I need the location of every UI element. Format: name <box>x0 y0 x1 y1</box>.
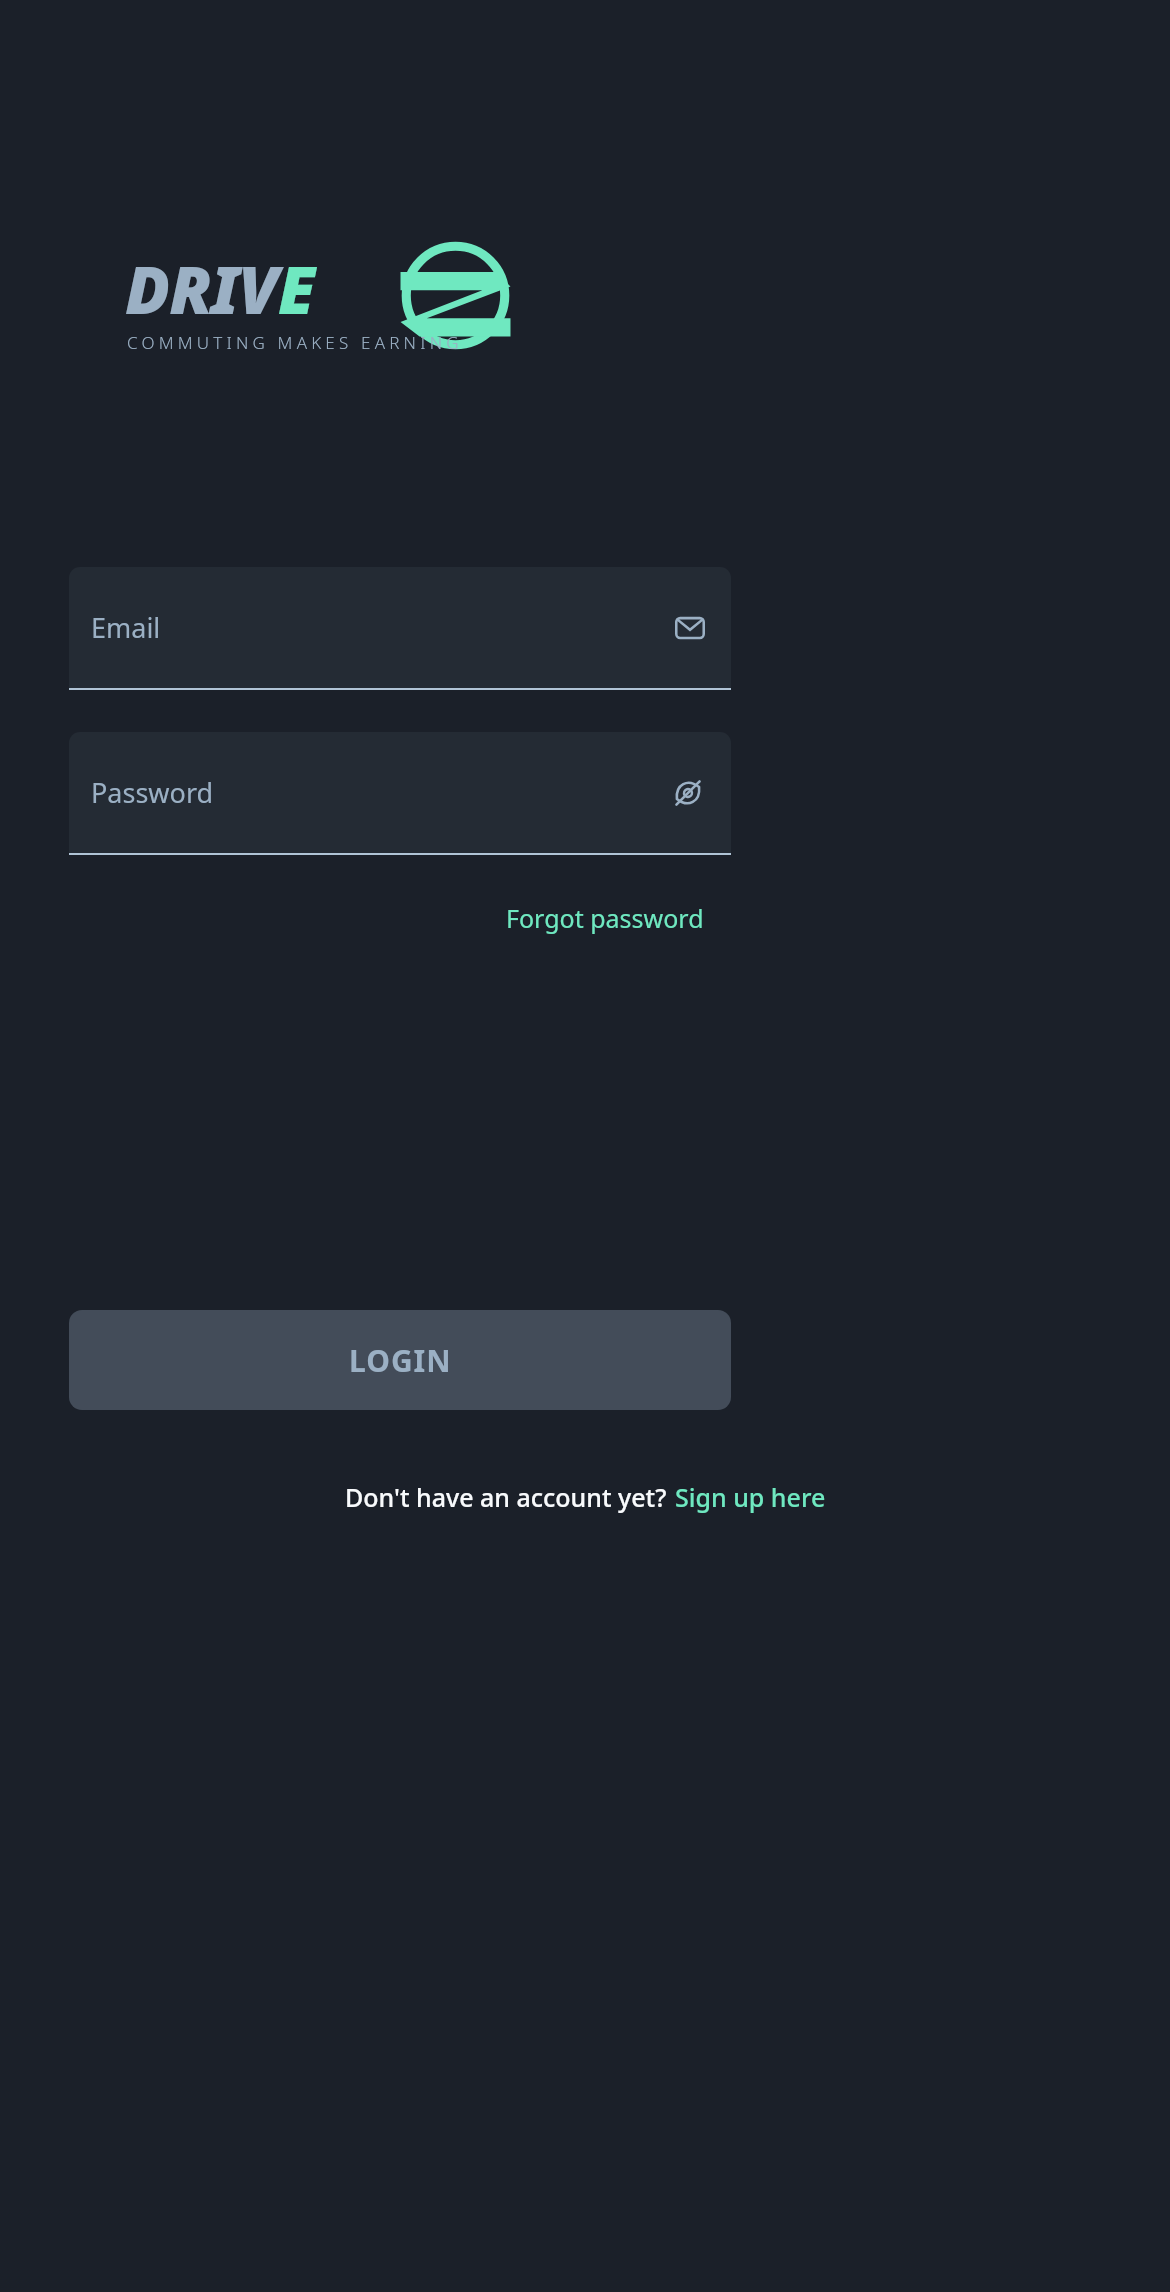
staticText: COMMUTING MAKES EARNING <box>127 331 463 354</box>
staticText: Sign up here <box>675 1480 826 1514</box>
button[interactable]: Email <box>69 567 731 690</box>
staticText: LOGIN <box>349 1340 452 1381</box>
staticText: Email <box>91 609 161 646</box>
other: Email <box>675 613 705 643</box>
button[interactable]: Forgot password <box>498 893 712 943</box>
staticText: Don't have an account yet? <box>345 1480 667 1514</box>
button[interactable]: LOGIN <box>69 1310 731 1410</box>
staticText: Password <box>91 774 214 811</box>
button[interactable]: Password <box>69 732 731 855</box>
staticText: DRIV <box>125 243 278 333</box>
staticText: Forgot password <box>506 901 704 935</box>
other: Show password <box>671 776 705 810</box>
staticText: E <box>278 243 316 333</box>
button[interactable]: Sign up here <box>675 1480 826 1514</box>
